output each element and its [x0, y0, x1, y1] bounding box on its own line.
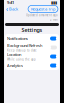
button[interactable]: Location toggle: [50, 54, 57, 58]
button[interactable]: Notifications toggle: [50, 36, 57, 40]
staticText: 2 min: [50, 18, 58, 21]
staticText: While using the app: [7, 58, 36, 61]
staticText: Settings: [21, 26, 42, 34]
staticText: Keep data up to date: [7, 49, 37, 52]
button[interactable]: Background Refresh toggle: [50, 45, 57, 49]
staticText: Back: [9, 6, 18, 12]
button[interactable]: ‹: [6, 5, 18, 13]
staticText: 9:41: [7, 0, 14, 5]
staticText: ‹: [6, 5, 8, 13]
staticText: ▮▮▮: [51, 0, 57, 5]
button[interactable]: Analytics toggle: [50, 63, 57, 67]
button[interactable]: Request a Trip: [28, 5, 58, 12]
staticText: Location: [7, 52, 21, 57]
staticText: Request a Trip: [31, 6, 55, 12]
staticText: Updated a moment ago: [26, 13, 58, 17]
staticText: Analytics: [7, 63, 23, 68]
staticText: Notifications: [7, 36, 28, 41]
staticText: Background Refresh: [7, 43, 42, 48]
